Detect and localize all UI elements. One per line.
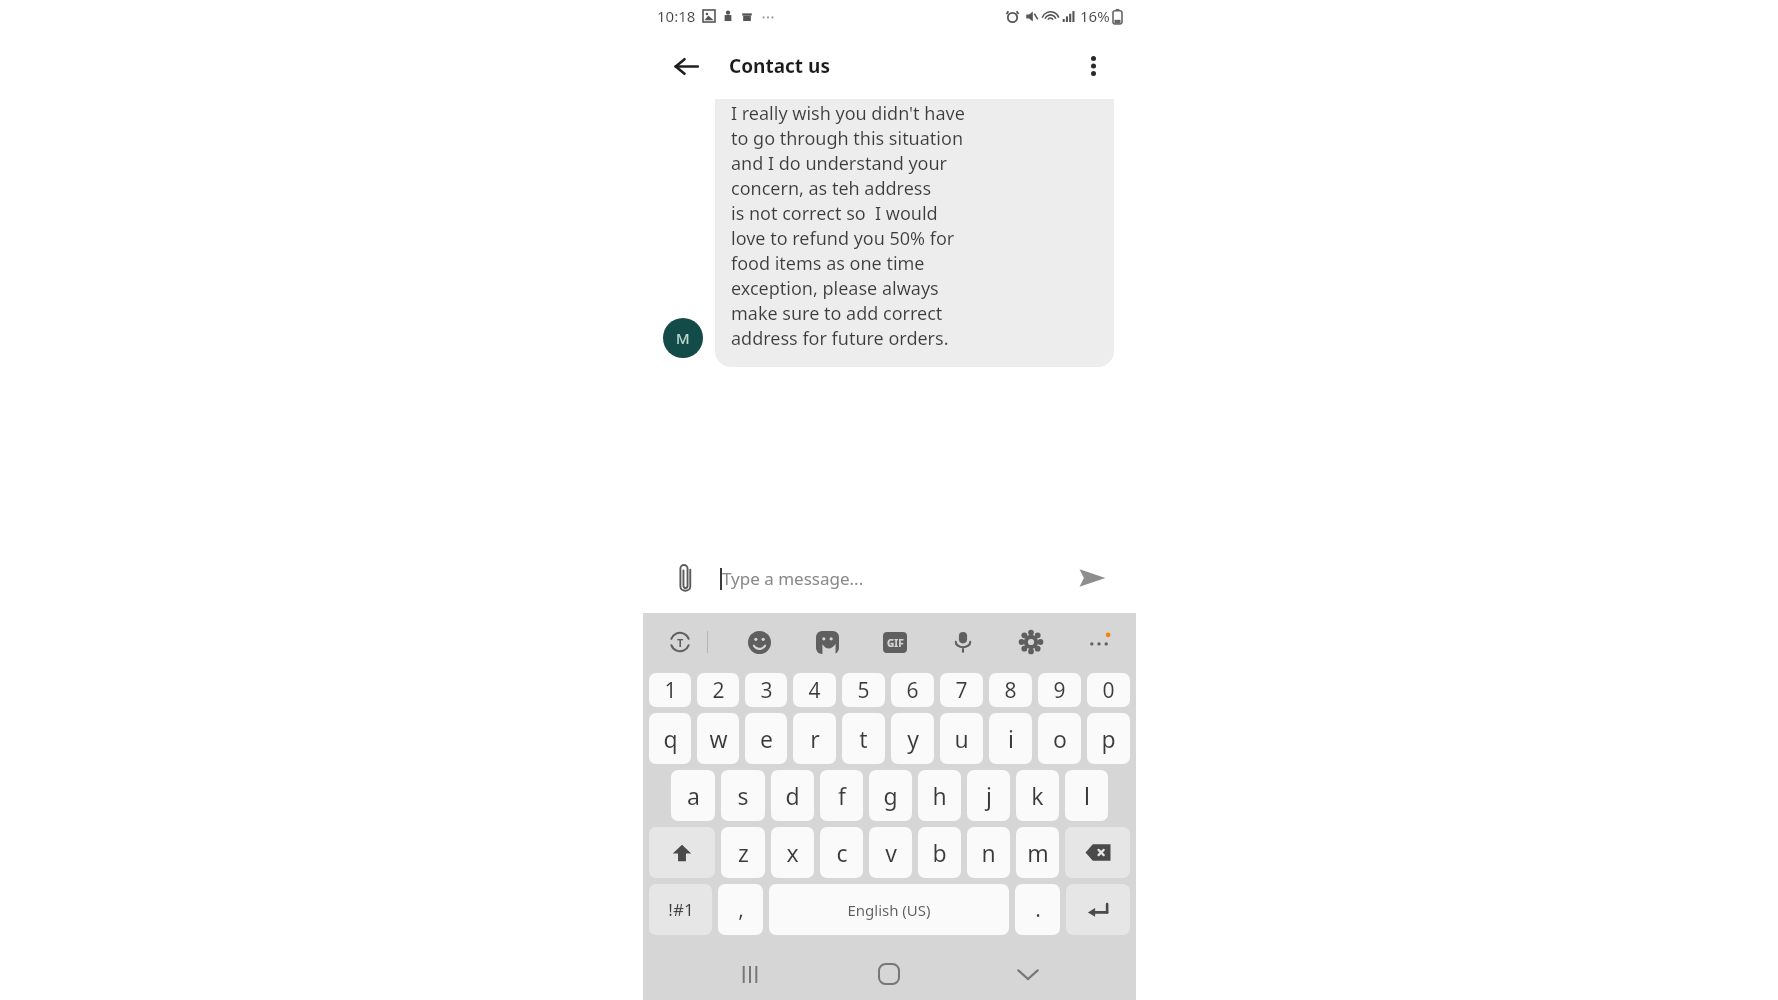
staticText: q <box>663 723 678 754</box>
button[interactable]: i <box>989 713 1032 764</box>
staticText: y <box>907 723 919 754</box>
staticText: 6 <box>906 676 919 705</box>
staticText: make sure to add correct <box>731 301 943 326</box>
button[interactable]: a <box>671 770 715 821</box>
button[interactable]: !#1 <box>649 884 712 935</box>
button[interactable]: Shift <box>649 827 715 878</box>
staticText: f <box>838 780 846 811</box>
staticText: 2 <box>712 676 725 705</box>
button[interactable]: Backspace <box>1065 827 1130 878</box>
button[interactable]: s <box>721 770 765 821</box>
button[interactable]: Back <box>665 45 707 87</box>
button[interactable]: o <box>1038 713 1081 764</box>
button[interactable]: t <box>842 713 885 764</box>
staticText: s <box>737 780 749 811</box>
button[interactable]: p <box>1087 713 1130 764</box>
button[interactable]: n <box>967 827 1010 878</box>
staticText: u <box>954 723 969 754</box>
button[interactable]: k <box>1016 770 1059 821</box>
staticText: e <box>760 723 773 754</box>
button[interactable]: Voice input <box>946 625 980 659</box>
button[interactable]: 7 <box>940 673 983 707</box>
staticText: Contact us <box>729 53 830 79</box>
button[interactable]: Type a message... <box>720 567 1070 590</box>
button[interactable]: English (US) <box>769 884 1009 935</box>
staticText: x <box>786 837 799 868</box>
button[interactable]: Translate <box>663 625 697 659</box>
staticText: , <box>738 895 744 924</box>
staticText: p <box>1101 723 1116 754</box>
button[interactable]: x <box>771 827 814 878</box>
staticText: is not correct so I would <box>731 201 938 226</box>
staticText: i <box>1008 723 1014 754</box>
staticText: !#1 <box>668 898 694 921</box>
staticText: m <box>1027 837 1049 868</box>
button[interactable]: d <box>771 770 814 821</box>
button[interactable]: 9 <box>1038 673 1081 707</box>
staticText: 4 <box>808 676 821 705</box>
staticText: 8 <box>1004 676 1017 705</box>
button[interactable]: Stickers <box>810 625 844 659</box>
button[interactable]: f <box>820 770 863 821</box>
staticText: b <box>932 837 947 868</box>
button[interactable]: Emoji <box>742 625 776 659</box>
button[interactable]: 8 <box>989 673 1032 707</box>
staticText: 16% <box>1080 6 1110 26</box>
button[interactable]: r <box>793 713 836 764</box>
button[interactable]: g <box>869 770 912 821</box>
staticText: Type a message... <box>722 567 864 590</box>
staticText: 10:18 <box>657 6 696 26</box>
button[interactable]: Home <box>866 951 912 997</box>
button[interactable]: e <box>745 713 787 764</box>
button[interactable]: y <box>891 713 934 764</box>
button[interactable]: . <box>1015 884 1060 935</box>
staticText: g <box>883 780 898 811</box>
button[interactable]: v <box>869 827 912 878</box>
button[interactable]: h <box>918 770 961 821</box>
button[interactable]: j <box>967 770 1010 821</box>
button[interactable]: 2 <box>697 673 739 707</box>
staticText: 5 <box>857 676 870 705</box>
staticText: concern, as teh address <box>731 176 932 201</box>
button[interactable]: GIF <box>878 625 912 659</box>
button[interactable]: , <box>718 884 763 935</box>
button[interactable]: z <box>721 827 765 878</box>
staticText: k <box>1031 780 1044 811</box>
staticText: 7 <box>955 676 968 705</box>
button[interactable]: Enter <box>1066 884 1130 935</box>
button[interactable]: 6 <box>891 673 934 707</box>
button[interactable]: l <box>1065 770 1108 821</box>
button[interactable]: Hide keyboard <box>1005 951 1051 997</box>
staticText: o <box>1053 723 1067 754</box>
button[interactable]: 1 <box>649 673 691 707</box>
button[interactable]: Attach file <box>665 558 705 598</box>
staticText: to go through this situation <box>731 126 964 151</box>
staticText: love to refund you 50% for <box>731 226 955 251</box>
staticText: 3 <box>760 676 773 705</box>
staticText: h <box>932 780 947 811</box>
button[interactable]: 0 <box>1087 673 1130 707</box>
button[interactable]: 4 <box>793 673 836 707</box>
staticText: 9 <box>1053 676 1066 705</box>
button[interactable]: u <box>940 713 983 764</box>
button[interactable]: q <box>649 713 691 764</box>
staticText: T <box>677 635 684 650</box>
staticText: t <box>859 723 868 754</box>
button[interactable]: Recent apps <box>727 951 773 997</box>
button[interactable]: c <box>820 827 863 878</box>
button[interactable]: b <box>918 827 961 878</box>
staticText: v <box>885 837 897 868</box>
button[interactable]: Send <box>1070 556 1114 600</box>
staticText: GIF <box>887 636 904 650</box>
button[interactable]: 5 <box>842 673 885 707</box>
staticText: n <box>981 837 996 868</box>
button[interactable]: m <box>1016 827 1059 878</box>
button[interactable]: More options <box>1072 45 1114 87</box>
staticText: z <box>738 837 749 868</box>
staticText: c <box>836 837 848 868</box>
button[interactable]: Settings <box>1014 625 1048 659</box>
button[interactable]: More <box>1082 625 1116 659</box>
button[interactable]: w <box>697 713 739 764</box>
button[interactable]: 3 <box>745 673 787 707</box>
staticText: I really wish you didn't have <box>731 101 965 126</box>
